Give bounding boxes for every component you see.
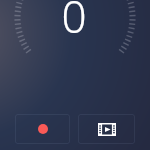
button[interactable]: Record video bbox=[78, 114, 135, 144]
button[interactable]: Record audio bbox=[15, 114, 70, 144]
staticText: 0 bbox=[61, 0, 87, 46]
